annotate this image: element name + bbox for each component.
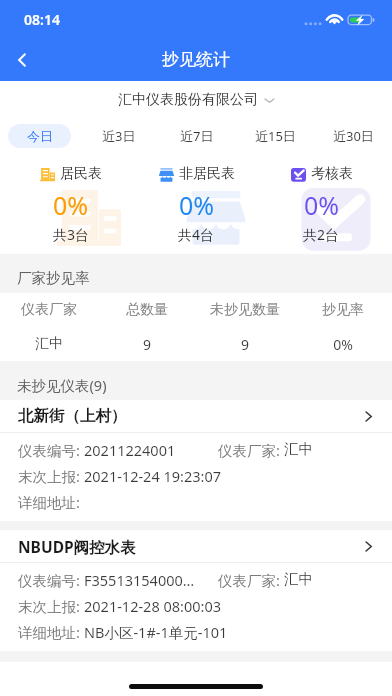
staticText: 末次上报: <box>18 596 84 616</box>
staticText: 非居民表 <box>179 165 235 183</box>
staticText: 共2台 <box>303 225 340 244</box>
staticText: 近3日 <box>102 127 136 145</box>
staticText: 2021-12-28 08:00:03 <box>84 596 221 616</box>
button[interactable]: 居民表 <box>8 152 134 254</box>
staticText: 末次上报: <box>18 466 84 486</box>
staticText: 汇中 <box>284 570 313 588</box>
button[interactable]: 考核表 <box>259 152 384 254</box>
button[interactable]: 汇中仪表股份有限公司 <box>0 81 392 119</box>
staticText: 汇中 <box>0 335 98 353</box>
staticText: NBUDP阀控水表 <box>18 536 361 557</box>
button[interactable]: 非居民表 <box>134 152 259 254</box>
staticText: 仪表厂家: <box>218 440 284 460</box>
staticText: F35513154000… <box>84 570 195 590</box>
staticText: 2021-12-24 19:23:07 <box>84 466 221 486</box>
staticText: 近15日 <box>255 127 296 145</box>
staticText: 仪表编号: <box>18 570 84 590</box>
button[interactable]: NBUDP阀控水表 <box>0 530 392 651</box>
staticText: 0% <box>53 188 89 222</box>
staticText: 未抄见仪表(9) <box>17 375 107 395</box>
staticText: 详细地址: <box>18 622 84 642</box>
staticText: 未抄见数量 <box>196 301 294 319</box>
staticText: 共3台 <box>53 225 90 244</box>
staticText: 仪表编号: <box>18 440 84 460</box>
staticText: 0% <box>179 188 215 222</box>
button[interactable]: 近30日 <box>314 119 392 152</box>
staticText: 抄见率 <box>294 301 392 319</box>
button[interactable]: 近3日 <box>79 119 158 152</box>
staticText: 近7日 <box>180 127 214 145</box>
staticText: 9 <box>98 335 196 354</box>
staticText: 详细地址: <box>18 492 84 512</box>
staticText: 厂家抄见率 <box>17 269 90 287</box>
staticText: 近30日 <box>333 127 374 145</box>
staticText: 汇中仪表股份有限公司 <box>118 91 258 109</box>
staticText: NB小区-1#-1单元-101 <box>84 622 228 642</box>
button[interactable]: Back <box>0 38 44 81</box>
staticText: 居民表 <box>60 165 102 183</box>
staticText: 20211224001 <box>84 440 176 460</box>
staticText: 共4台 <box>178 225 215 244</box>
staticText: 0% <box>294 335 392 354</box>
staticText: 抄见统计 <box>162 49 230 70</box>
staticText: 仪表厂家: <box>218 570 284 590</box>
button[interactable]: 近7日 <box>158 119 236 152</box>
button[interactable]: 北新街（上村） <box>0 400 392 521</box>
staticText: 北新街（上村） <box>18 406 361 426</box>
staticText: 仪表厂家 <box>0 301 98 319</box>
staticText: 汇中 <box>284 440 313 458</box>
staticText: 今日 <box>27 128 53 144</box>
staticText: 0% <box>304 188 340 222</box>
staticText: 08:14 <box>24 10 60 29</box>
staticText: 总数量 <box>98 301 196 319</box>
button[interactable]: 近15日 <box>236 119 314 152</box>
button[interactable]: 今日 <box>0 119 79 152</box>
staticText: 9 <box>196 335 294 354</box>
staticText: 考核表 <box>311 165 353 183</box>
